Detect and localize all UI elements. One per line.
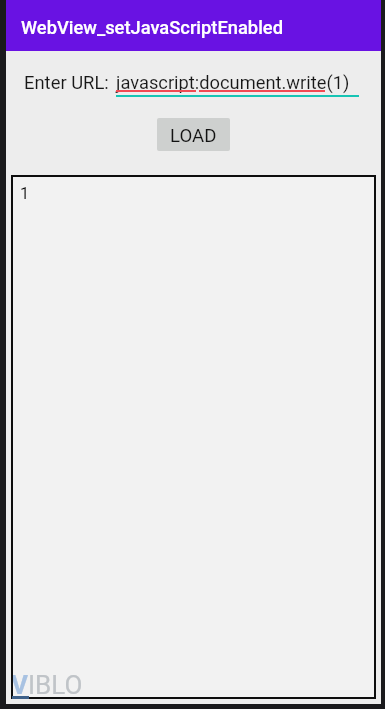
staticText: WebView_setJavaScriptEnabled — [21, 17, 283, 38]
button[interactable]: URL input field — [116, 66, 359, 97]
button[interactable]: LOAD — [157, 118, 230, 151]
staticText: javascript:document.write(1) — [116, 72, 350, 93]
staticText: VIBLO — [11, 670, 83, 700]
staticText: Enter URL: — [24, 72, 109, 94]
staticText: LOAD — [170, 125, 217, 147]
staticText: 1 — [20, 184, 30, 203]
